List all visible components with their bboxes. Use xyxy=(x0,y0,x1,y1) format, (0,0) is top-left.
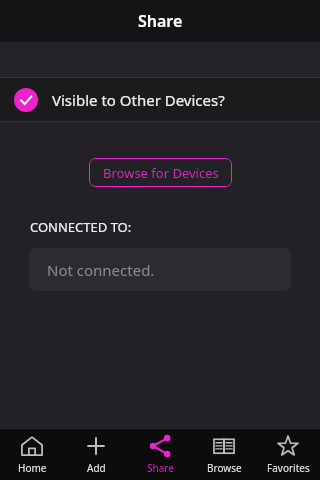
staticText: Home xyxy=(18,461,47,475)
staticText: Share xyxy=(147,461,174,475)
button[interactable]: Add xyxy=(64,429,128,480)
staticText: Not connected. xyxy=(47,260,155,280)
button[interactable]: Home xyxy=(0,429,64,480)
staticText: Browse xyxy=(207,461,242,475)
button[interactable]: Not connected. xyxy=(29,248,291,291)
button[interactable]: Favorites xyxy=(256,429,320,480)
staticText: Visible to Other Devices? xyxy=(52,90,225,110)
button[interactable]: Browse for Devices xyxy=(89,158,232,187)
button[interactable]: Browse xyxy=(192,429,256,480)
staticText: Browse for Devices xyxy=(103,164,219,182)
button[interactable]: Visible to Other Devices? xyxy=(0,78,320,121)
button[interactable]: Share xyxy=(128,429,192,480)
staticText: Add xyxy=(87,461,106,475)
staticText: Favorites xyxy=(267,461,310,475)
staticText: CONNECTED TO: xyxy=(30,218,132,236)
staticText: Share xyxy=(138,10,183,32)
